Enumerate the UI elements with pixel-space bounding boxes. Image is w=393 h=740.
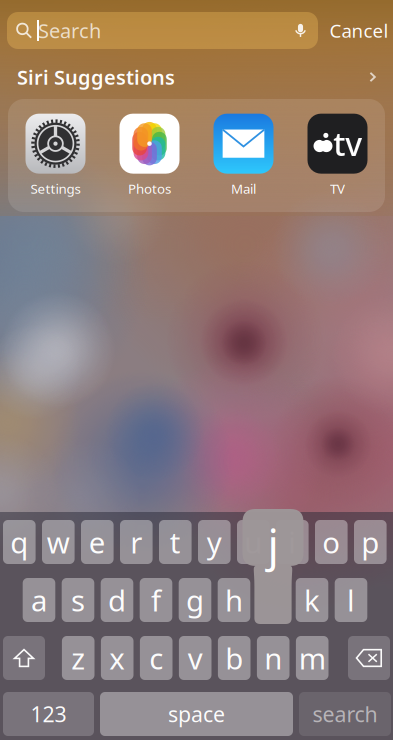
button[interactable]: q bbox=[3, 520, 36, 564]
button[interactable]: f bbox=[140, 578, 172, 622]
button[interactable]: i bbox=[276, 520, 309, 564]
button[interactable]: x bbox=[101, 636, 133, 680]
staticText: d bbox=[108, 580, 126, 619]
button[interactable]: 123 bbox=[3, 692, 94, 736]
staticText: b bbox=[225, 638, 243, 677]
button[interactable]: p bbox=[354, 520, 387, 564]
staticText: l bbox=[347, 580, 355, 619]
button[interactable]: Photos bbox=[102, 107, 196, 203]
staticText: Settings bbox=[30, 180, 80, 197]
button[interactable]: r bbox=[120, 520, 153, 564]
staticText: h bbox=[225, 580, 243, 619]
staticText: Search bbox=[38, 17, 101, 44]
button[interactable]: c bbox=[140, 636, 172, 680]
staticText: w bbox=[47, 522, 70, 561]
button[interactable]: Siri Suggestions bbox=[0, 62, 393, 92]
staticText: f bbox=[151, 580, 161, 619]
staticText: n bbox=[264, 638, 282, 677]
button[interactable]: n bbox=[257, 636, 289, 680]
button[interactable]: Settings bbox=[8, 107, 102, 203]
staticText: m bbox=[299, 638, 326, 677]
staticText: search bbox=[312, 700, 377, 728]
button[interactable]: tv bbox=[290, 107, 384, 203]
staticText: Cancel bbox=[329, 18, 388, 43]
staticText: k bbox=[304, 580, 320, 619]
button[interactable]: b bbox=[218, 636, 250, 680]
staticText: z bbox=[71, 638, 85, 677]
staticText: x bbox=[109, 638, 125, 677]
button[interactable]: Cancel bbox=[323, 12, 393, 49]
staticText: j bbox=[267, 515, 278, 573]
staticText: TV bbox=[330, 180, 345, 197]
staticText: c bbox=[149, 638, 163, 677]
staticText: p bbox=[361, 522, 379, 561]
staticText: s bbox=[71, 580, 85, 619]
button[interactable]: e bbox=[81, 520, 114, 564]
staticText: space bbox=[168, 700, 225, 728]
button[interactable]: w bbox=[42, 520, 75, 564]
button[interactable]: o bbox=[315, 520, 348, 564]
staticText: r bbox=[130, 522, 142, 561]
staticText: Photos bbox=[128, 180, 171, 197]
staticText: o bbox=[322, 522, 340, 561]
staticText: g bbox=[186, 580, 204, 619]
staticText: 123 bbox=[30, 700, 66, 728]
button[interactable]: t bbox=[159, 520, 192, 564]
button[interactable]: Delete bbox=[348, 636, 390, 680]
button[interactable]: l bbox=[335, 578, 367, 622]
button[interactable]: v bbox=[179, 636, 211, 680]
staticText: Siri Suggestions bbox=[17, 64, 175, 90]
button[interactable]: s bbox=[62, 578, 94, 622]
button[interactable]: h bbox=[218, 578, 250, 622]
button[interactable]: d bbox=[101, 578, 133, 622]
button[interactable]: Mail bbox=[196, 107, 290, 203]
button[interactable]: Search bbox=[7, 12, 318, 49]
staticText: tv bbox=[333, 122, 362, 165]
staticText: e bbox=[89, 522, 106, 561]
button[interactable]: space bbox=[100, 692, 293, 736]
button[interactable]: y bbox=[198, 520, 231, 564]
button[interactable]: g bbox=[179, 578, 211, 622]
staticText: y bbox=[207, 522, 222, 561]
staticText: Mail bbox=[231, 180, 256, 197]
button[interactable]: a bbox=[23, 578, 55, 622]
staticText: a bbox=[31, 580, 47, 619]
staticText: q bbox=[10, 522, 28, 561]
button[interactable]: Shift bbox=[3, 636, 45, 680]
button[interactable]: z bbox=[62, 636, 94, 680]
button[interactable]: u bbox=[237, 520, 270, 564]
staticText: v bbox=[188, 638, 203, 677]
staticText: t bbox=[170, 522, 181, 561]
button[interactable]: m bbox=[296, 636, 328, 680]
button[interactable]: k bbox=[296, 578, 328, 622]
button[interactable]: search bbox=[299, 692, 391, 736]
